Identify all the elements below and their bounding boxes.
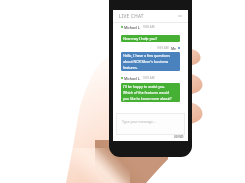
staticText: Hello, I have a few questions about NCR … [123,53,170,70]
staticText: Type your message... [122,119,156,124]
staticText: 9:59 AM [143,76,155,80]
button[interactable]: I'll be happy to assist you. Which of th… [121,83,180,102]
staticText: 9:58 AM [143,25,155,29]
staticText: Michael L. [124,25,141,29]
button[interactable]: LIVE CHAT [113,10,188,22]
button[interactable]: SEND [174,134,184,139]
staticText: LIVE CHAT [119,13,144,19]
staticText: 9:59 AM [157,46,169,50]
button[interactable]: How may I help you? [121,35,180,42]
staticText: Michael L. [124,76,141,80]
staticText: SEND [174,134,184,139]
staticText: I'll be happy to assist you. Which of th… [123,84,172,101]
button[interactable]: Hello, I have a few questions about NCR … [121,52,180,71]
staticText: Me [171,46,177,50]
button[interactable]: Type your message... [116,113,185,135]
staticText: How may I help you? [123,36,158,41]
button[interactable]: Minimise chat [177,13,183,19]
